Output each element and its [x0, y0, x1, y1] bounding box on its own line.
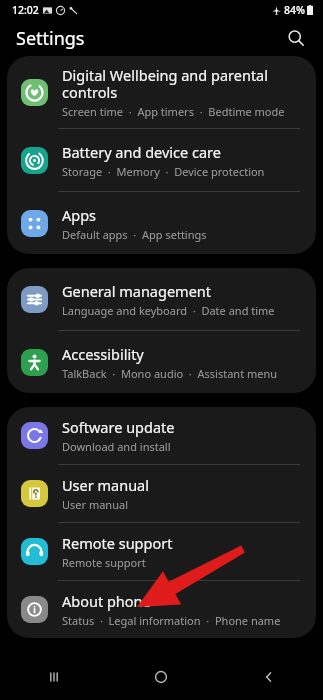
staticText: Digital Wellbeing and parental controls — [62, 65, 268, 102]
staticText: About phone — [62, 591, 151, 611]
staticText: Remote support — [62, 533, 173, 553]
staticText: 12:02 — [12, 3, 39, 17]
staticText: 84% — [284, 3, 305, 17]
staticText: TalkBack · Mono audio · Assistant menu — [62, 366, 278, 381]
button[interactable]: Recent apps — [0, 654, 107, 700]
button[interactable]: About phone — [7, 581, 316, 638]
staticText: Settings — [16, 26, 85, 51]
staticText: Download and install — [62, 439, 171, 454]
staticText: Default apps · App settings — [62, 227, 207, 242]
staticText: Language and keyboard · Date and time — [62, 303, 275, 318]
button[interactable]: Battery and device care — [7, 129, 316, 191]
staticText: Apps — [62, 205, 97, 225]
button[interactable]: Software update — [7, 407, 316, 464]
button[interactable]: Home — [107, 654, 215, 700]
staticText: Status · Legal information · Phone name — [62, 613, 281, 628]
button[interactable]: Accessibility — [7, 331, 316, 393]
button[interactable]: Apps — [7, 192, 316, 254]
button[interactable]: User manual — [7, 465, 316, 522]
button[interactable]: Remote support — [7, 523, 316, 580]
button[interactable]: Digital Wellbeing and parental controls — [7, 56, 316, 128]
staticText: Remote support — [62, 555, 146, 570]
staticText: Software update — [62, 417, 175, 437]
staticText: User manual — [62, 497, 128, 512]
button[interactable]: Search — [281, 23, 311, 53]
button[interactable]: Back — [215, 654, 323, 700]
button[interactable]: General management — [7, 268, 316, 330]
staticText: Battery and device care — [62, 142, 221, 162]
staticText: Accessibility — [62, 344, 144, 364]
staticText: Screen time · App timers · Bedtime mode — [62, 104, 285, 119]
staticText: User manual — [62, 475, 149, 495]
staticText: General management — [62, 281, 212, 301]
staticText: Storage · Memory · Device protection — [62, 164, 265, 179]
